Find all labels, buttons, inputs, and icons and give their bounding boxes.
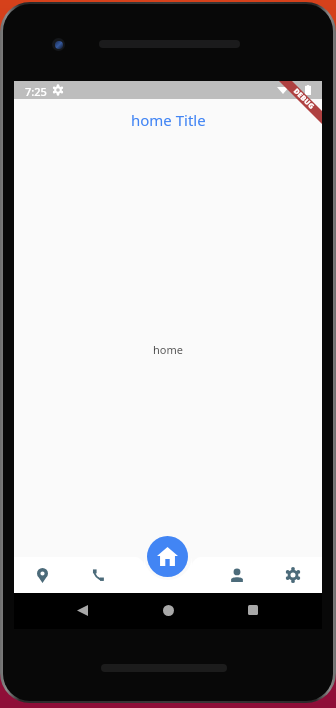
button[interactable]: home Title	[131, 110, 206, 130]
button[interactable]: Home	[155, 597, 181, 623]
staticText: home	[153, 342, 183, 357]
button[interactable]: Home	[147, 536, 188, 577]
staticText: 7:25	[25, 84, 47, 99]
button[interactable]: Back	[69, 597, 95, 623]
button[interactable]: Recents	[240, 597, 266, 623]
button[interactable]: Location	[28, 561, 56, 589]
button[interactable]: Call	[84, 561, 112, 589]
staticText: home Title	[131, 110, 206, 130]
button[interactable]: Settings	[279, 561, 307, 589]
button[interactable]: Profile	[223, 561, 251, 589]
